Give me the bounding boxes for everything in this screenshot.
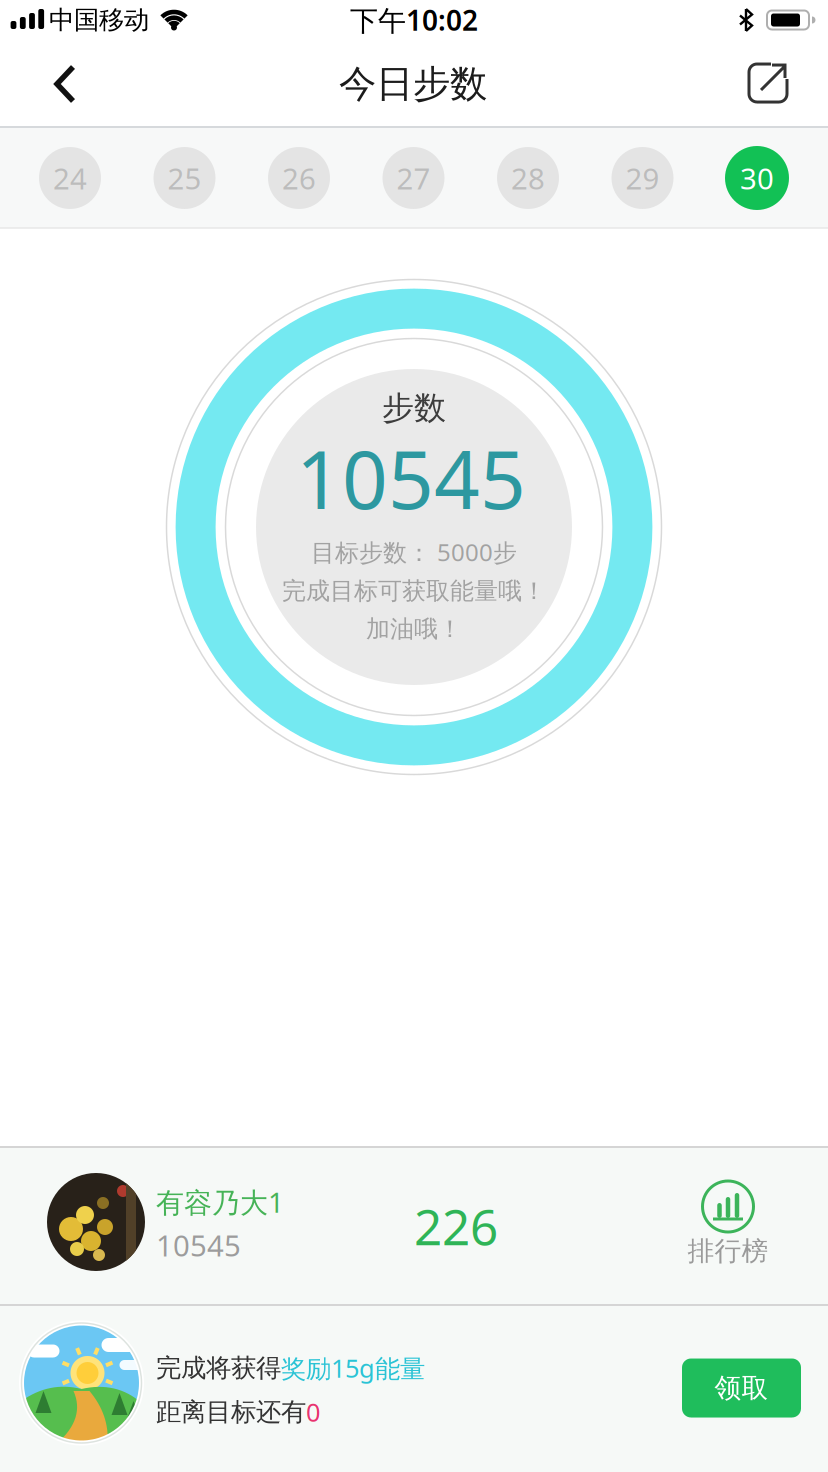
button[interactable]: 27 [382,147,444,209]
button[interactable]: 24 [39,147,101,209]
staticText: 下午10:02 [350,1,478,39]
staticText: 领取 [714,1372,768,1404]
staticText: 28 [511,158,545,197]
staticText: 10545 [156,1225,241,1264]
staticText: 10545 [296,425,526,531]
button[interactable]: 排行榜 [668,1178,788,1278]
staticText: 完成目标可获取能量哦！ [282,576,546,606]
staticText: 30 [740,158,774,197]
staticText: 29 [625,158,659,197]
staticText: 有容乃大1 [156,1183,284,1221]
staticText: 24 [53,158,87,197]
staticText: 完成将获得 [156,1352,281,1383]
staticText: 26 [282,158,316,197]
button[interactable]: 30 [725,146,789,210]
button[interactable]: 29 [611,147,673,209]
staticText: 步数 [382,388,446,428]
staticText: 27 [396,158,430,197]
staticText: 目标步数： 5000步 [311,536,517,568]
staticText: 奖励15g能量 [281,1351,425,1385]
button[interactable]: 28 [497,147,559,209]
staticText: 今日步数 [339,61,487,107]
staticText: 226 [414,1193,498,1259]
staticText: 中国移动 [49,4,149,35]
button[interactable]: 26 [268,147,330,209]
button[interactable]: 25 [153,147,215,209]
staticText: 加油哦！ [366,614,462,644]
staticText: 0 [306,1395,320,1429]
staticText: 距离目标还有 [156,1396,306,1427]
button[interactable]: Share [738,53,798,113]
button[interactable]: 领取 [682,1358,801,1417]
button[interactable]: Back [25,44,105,124]
staticText: 排行榜 [687,1235,768,1267]
staticText: 25 [167,158,201,197]
